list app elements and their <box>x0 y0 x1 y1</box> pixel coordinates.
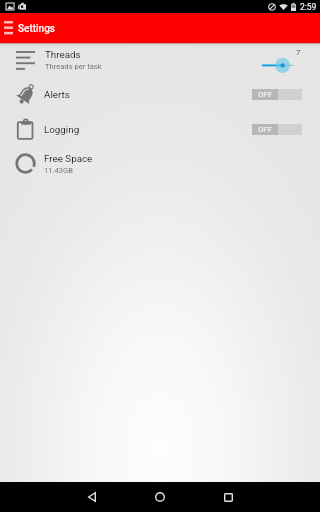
staticText: OFF <box>258 125 272 134</box>
button[interactable]: Back <box>58 482 126 512</box>
staticText: Free Space <box>44 153 93 164</box>
button[interactable]: Home <box>126 482 194 512</box>
staticText: Threads <box>45 49 81 60</box>
staticText: Alerts <box>44 89 70 100</box>
staticText: Settings <box>18 23 56 35</box>
staticText: 2:59 <box>300 2 317 12</box>
button[interactable]: Alerts <box>0 77 320 112</box>
staticText: Logging <box>44 124 80 135</box>
staticText: 7 <box>296 48 301 57</box>
button[interactable]: Threads per task slider <box>256 53 302 75</box>
button[interactable]: OFF <box>252 89 302 100</box>
staticText: 11.43GB <box>44 166 73 175</box>
button[interactable]: Free Space <box>0 146 320 181</box>
button[interactable]: Recent apps <box>194 482 262 512</box>
staticText: Threads per task <box>45 62 102 71</box>
button[interactable]: OFF <box>252 124 302 135</box>
button[interactable]: Open navigation drawer <box>0 17 17 39</box>
button[interactable]: Threads <box>0 43 320 77</box>
button[interactable]: Logging <box>0 112 320 147</box>
staticText: OFF <box>258 90 272 99</box>
